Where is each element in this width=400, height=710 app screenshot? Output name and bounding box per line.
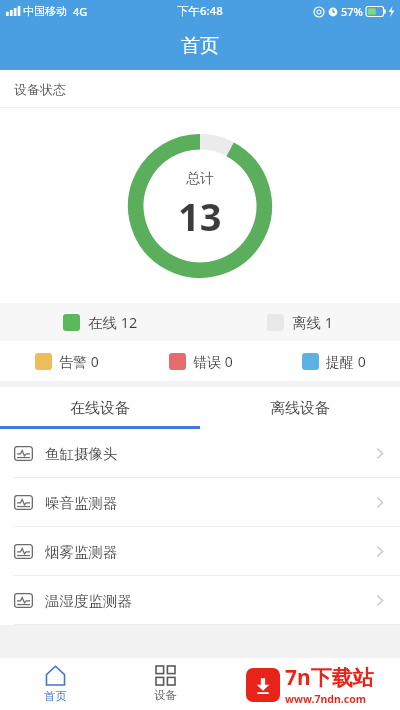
other: 首页 — [45, 665, 66, 686]
staticText: 提醒 0 — [326, 352, 366, 371]
button[interactable]: 设备 — [110, 658, 220, 710]
button[interactable]: 首页 — [0, 658, 110, 710]
staticText: 4G — [73, 4, 88, 19]
staticText: 在线设备 — [70, 399, 130, 418]
staticText: 设备 — [154, 688, 177, 702]
button[interactable]: 噪音监测器 — [0, 478, 400, 527]
staticText: 温湿度监测器 — [45, 592, 132, 610]
button[interactable]: 鱼缸摄像头 — [0, 429, 400, 478]
button[interactable]: 提醒 0 — [267, 341, 400, 381]
staticText: 下午6:48 — [177, 3, 223, 19]
staticText: 中国移动 — [23, 4, 67, 18]
button[interactable]: 烟雾监测器 — [0, 527, 400, 576]
other: 设备 — [156, 666, 175, 685]
staticText: 错误 0 — [193, 352, 233, 371]
staticText: 13 — [178, 190, 222, 242]
staticText: 烟雾监测器 — [45, 543, 118, 561]
staticText: 在线 12 — [88, 312, 138, 332]
staticText: 告警 0 — [59, 352, 99, 371]
button[interactable]: 告警 0 — [0, 341, 134, 381]
staticText: 噪音监测器 — [45, 494, 118, 512]
button[interactable]: 离线设备 — [200, 387, 400, 429]
button[interactable]: 离线 1 — [200, 303, 400, 341]
staticText: 首页 — [181, 34, 219, 58]
button[interactable]: 温湿度监测器 — [0, 576, 400, 625]
button[interactable]: 在线 12 — [0, 303, 200, 341]
staticText: 7n下载站 — [285, 663, 374, 692]
staticText: 离线 1 — [292, 312, 334, 332]
staticText: 鱼缸摄像头 — [45, 445, 118, 463]
staticText: 首页 — [44, 689, 67, 703]
button[interactable]: 在线设备 — [0, 387, 200, 429]
staticText: www.7ndn.com — [285, 692, 366, 706]
staticText: 设备状态 — [14, 81, 66, 97]
staticText: 57% — [341, 4, 363, 19]
staticText: 离线设备 — [270, 399, 330, 418]
button[interactable]: 错误 0 — [134, 341, 267, 381]
staticText: 总计 — [186, 170, 214, 188]
